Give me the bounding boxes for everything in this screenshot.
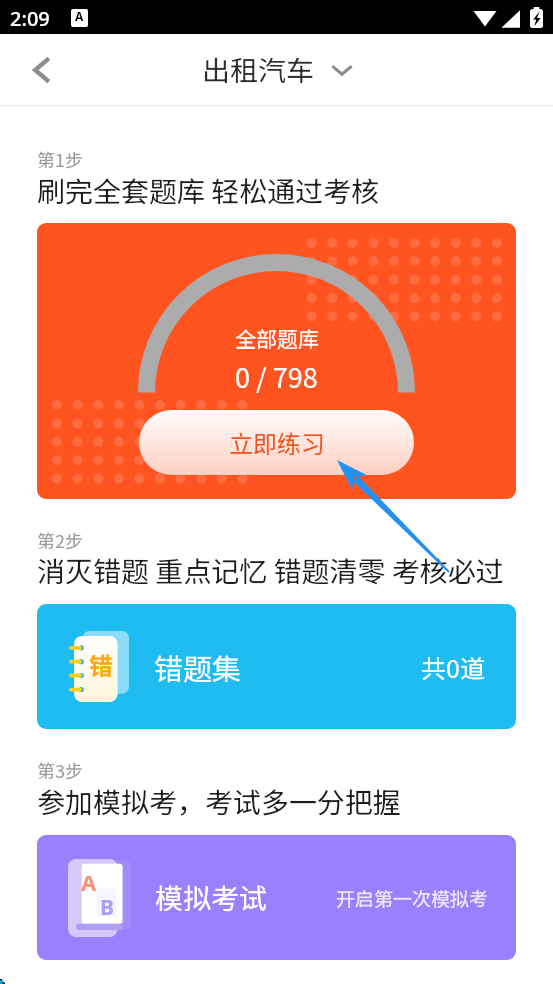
button[interactable]: Back xyxy=(14,42,70,98)
staticText: 第2步 xyxy=(37,527,83,553)
staticText: 参加模拟考，考试多一分把握 xyxy=(37,781,402,822)
staticText: 开启第一次模拟考 xyxy=(336,884,489,912)
staticText: 2:09 xyxy=(10,5,50,32)
staticText: 错题集 xyxy=(154,646,242,688)
button[interactable]: 错 xyxy=(37,604,516,729)
button[interactable]: 全部题库 xyxy=(37,223,516,499)
staticText: 立即练习 xyxy=(229,425,325,460)
button[interactable]: 立即练习 xyxy=(139,410,414,475)
staticText: A xyxy=(81,867,97,897)
staticText: 刷完全套题库 轻松通过考核 xyxy=(37,170,380,211)
staticText: 第1步 xyxy=(37,146,83,172)
staticText: 模拟考试 xyxy=(155,877,268,918)
staticText: 消灭错题 重点记忆 错题清零 考核必过 xyxy=(37,550,504,591)
staticText: A xyxy=(75,8,84,24)
staticText: 第3步 xyxy=(37,757,83,783)
staticText: 0 / 798 xyxy=(235,357,318,396)
button[interactable]: 出租汽车 xyxy=(202,49,353,90)
button[interactable]: A xyxy=(37,835,516,960)
staticText: 错 xyxy=(89,647,113,682)
staticText: 全部题库 xyxy=(235,323,319,353)
staticText: 出租汽车 xyxy=(202,49,315,90)
staticText: 共0道 xyxy=(421,649,485,685)
staticText: B xyxy=(100,893,114,922)
